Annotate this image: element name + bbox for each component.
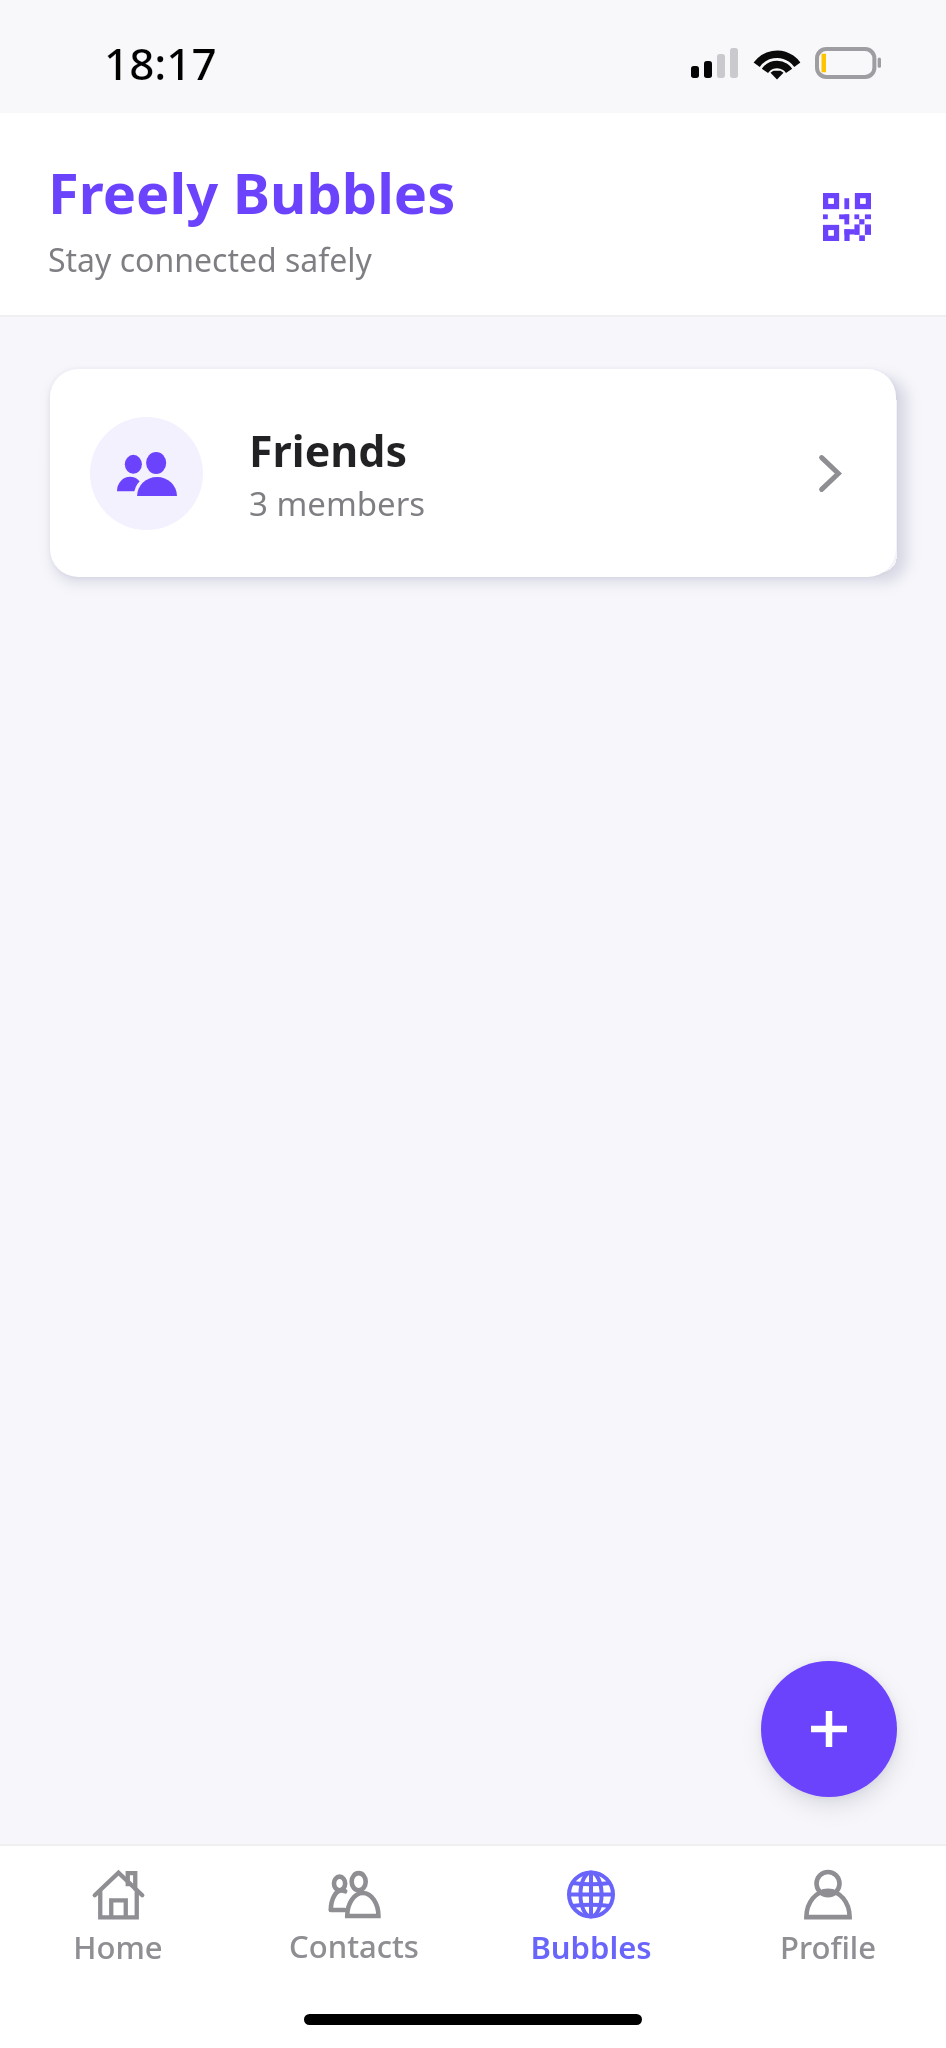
button[interactable]: Bubbles xyxy=(472,1867,709,1965)
button[interactable]: Scan QR code xyxy=(805,175,889,259)
staticText: Profile xyxy=(780,1926,876,1968)
button[interactable]: Contacts xyxy=(236,1869,472,1964)
staticText: Freely Bubbles xyxy=(48,154,456,230)
staticText: 18:17 xyxy=(104,33,217,93)
button[interactable]: Create new bubble xyxy=(761,1661,897,1797)
staticText: Friends xyxy=(249,421,408,480)
staticText: Home xyxy=(73,1926,163,1968)
button[interactable]: Home xyxy=(0,1868,236,1965)
staticText: Stay connected safely xyxy=(48,238,372,282)
button[interactable]: Friends xyxy=(50,369,896,577)
button[interactable]: Profile xyxy=(709,1868,946,1965)
staticText: Bubbles xyxy=(530,1926,652,1968)
staticText: Contacts xyxy=(289,1925,419,1967)
staticText: 3 members xyxy=(249,481,426,526)
